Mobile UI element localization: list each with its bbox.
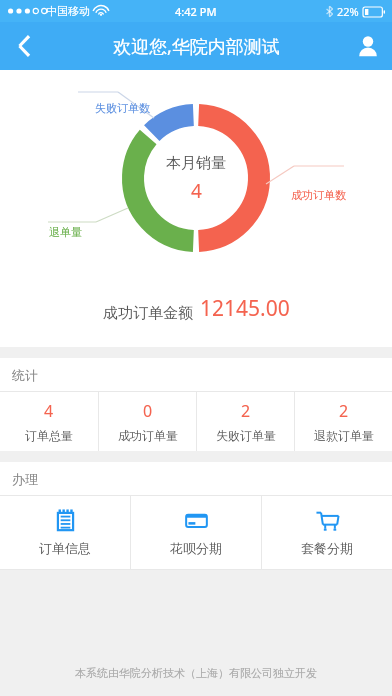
- staticText: 失败订单量: [216, 428, 276, 443]
- button[interactable]: 0: [99, 392, 196, 451]
- staticText: 0: [143, 400, 153, 422]
- staticText: 欢迎您,华院内部测试: [113, 34, 280, 59]
- staticText: 4: [44, 400, 54, 422]
- staticText: 2: [241, 400, 251, 422]
- staticText: 成功订单金额: [103, 304, 193, 323]
- staticText: 订单信息: [39, 540, 91, 556]
- staticText: 退单量: [49, 225, 82, 239]
- staticText: 办理: [12, 471, 38, 487]
- staticText: 失败订单数: [95, 101, 150, 115]
- button[interactable]: Profile: [344, 22, 392, 70]
- staticText: 4:42 PM: [175, 4, 217, 19]
- staticText: 22%: [337, 4, 359, 19]
- button[interactable]: 2: [197, 392, 294, 451]
- staticText: 套餐分期: [301, 540, 353, 556]
- button[interactable]: 花呗分期: [131, 496, 261, 569]
- staticText: 4: [191, 178, 202, 204]
- button[interactable]: 套餐分期: [262, 496, 392, 569]
- staticText: 中国移动: [46, 4, 90, 18]
- staticText: 本月销量: [166, 154, 226, 173]
- staticText: 统计: [12, 367, 38, 383]
- staticText: 12145.00: [200, 294, 290, 323]
- staticText: 花呗分期: [170, 540, 222, 556]
- staticText: 成功订单量: [118, 428, 178, 443]
- staticText: 订单总量: [25, 428, 73, 443]
- button[interactable]: 订单信息: [0, 496, 130, 569]
- staticText: 成功订单数: [291, 188, 346, 202]
- staticText: 退款订单量: [314, 428, 374, 443]
- button[interactable]: Back: [0, 22, 48, 70]
- staticText: 本系统由华院分析技术（上海）有限公司独立开发: [0, 666, 392, 680]
- button[interactable]: 2: [295, 392, 392, 451]
- button[interactable]: 4: [0, 392, 98, 451]
- staticText: 2: [339, 400, 349, 422]
